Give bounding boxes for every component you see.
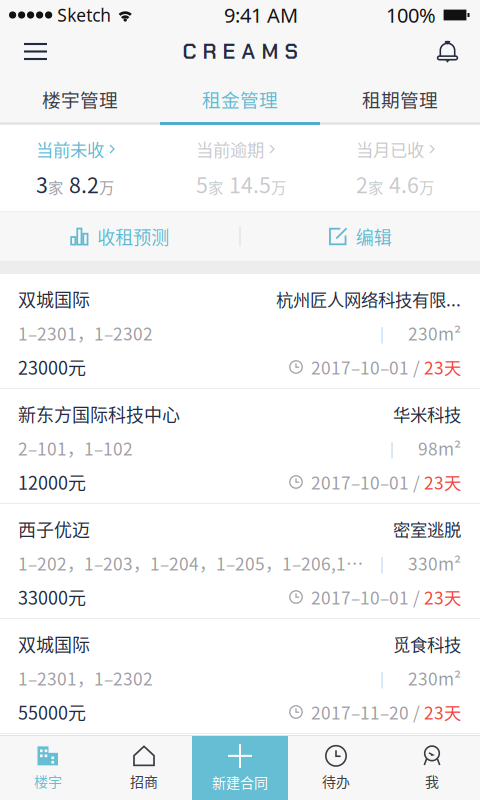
- button[interactable]: 新建合同: [192, 736, 288, 800]
- staticText: 230m²: [384, 665, 461, 691]
- staticText: 9:41 AM: [224, 2, 298, 28]
- button[interactable]: 新东方国际科技中心: [0, 389, 480, 504]
- button[interactable]: 西子优迈: [0, 504, 480, 619]
- staticText: 华米科技: [393, 401, 461, 427]
- button[interactable]: 楼宇: [0, 736, 96, 800]
- staticText: 2017–10–01 /: [303, 469, 424, 495]
- button[interactable]: 我: [384, 736, 480, 800]
- staticText: 4.6: [389, 169, 419, 199]
- staticText: 23000元: [18, 354, 86, 380]
- button[interactable]: 租期管理: [320, 73, 480, 125]
- staticText: C R E A M S: [182, 38, 297, 65]
- button[interactable]: 编辑: [240, 212, 480, 261]
- staticText: 33000元: [18, 584, 86, 610]
- staticText: Sketch: [52, 3, 116, 26]
- staticText: 2: [356, 169, 368, 199]
- staticText: |: [380, 322, 384, 344]
- staticText: 12000元: [18, 469, 86, 495]
- staticText: 2–101，1–102: [18, 435, 133, 461]
- staticText: 杭州匠人网络科技有限...: [276, 286, 461, 312]
- button[interactable]: 收租预测: [0, 212, 239, 261]
- button[interactable]: 双城国际: [0, 274, 480, 389]
- staticText: 3: [36, 169, 48, 199]
- staticText: 1–2301，1–2302: [18, 665, 153, 691]
- staticText: 编辑: [356, 223, 392, 250]
- staticText: 密室逃脱: [393, 516, 461, 542]
- staticText: 租金管理: [202, 85, 278, 112]
- staticText: 西子优迈: [18, 516, 90, 542]
- staticText: 楼宇管理: [42, 85, 118, 112]
- staticText: 万: [271, 176, 286, 198]
- staticText: 家: [368, 176, 383, 198]
- staticText: 100%: [386, 2, 436, 28]
- button[interactable]: 当前逾期: [160, 136, 320, 199]
- staticText: 2017–10–01 /: [303, 584, 424, 610]
- staticText: 双城国际: [18, 286, 90, 312]
- staticText: 98m²: [394, 435, 461, 461]
- staticText: 万: [99, 176, 114, 198]
- staticText: 55000元: [18, 699, 86, 725]
- button[interactable]: Menu: [0, 31, 61, 72]
- staticText: 23天: [424, 354, 461, 380]
- staticText: 5: [196, 169, 208, 199]
- staticText: 家: [48, 176, 63, 198]
- staticText: 招商: [130, 771, 158, 791]
- staticText: 1–2301，1–2302: [18, 320, 153, 346]
- staticText: 家: [208, 176, 223, 198]
- staticText: 收租预测: [97, 223, 169, 250]
- staticText: 330m²: [384, 550, 461, 576]
- button[interactable]: 当前未收: [0, 136, 160, 199]
- staticText: |: [380, 552, 384, 574]
- staticText: 当前逾期: [196, 136, 264, 162]
- staticText: 23天: [424, 584, 461, 610]
- staticText: 23天: [424, 699, 461, 725]
- staticText: 楼宇: [34, 771, 62, 791]
- staticText: 我: [425, 771, 439, 791]
- staticText: 2017–10–01 /: [303, 354, 424, 380]
- staticText: 1–202，1–203，1–204，1–205，1–206,1–207...: [18, 550, 370, 576]
- button[interactable]: 楼宇管理: [0, 73, 160, 125]
- staticText: 觅食科技: [393, 631, 461, 657]
- button[interactable]: 招商: [96, 736, 192, 800]
- staticText: 新东方国际科技中心: [18, 401, 180, 427]
- staticText: 23天: [424, 469, 461, 495]
- staticText: 租期管理: [362, 85, 438, 112]
- staticText: 当月已收: [356, 136, 424, 162]
- staticText: 2017–11–20 /: [303, 699, 424, 725]
- staticText: 待办: [322, 771, 350, 791]
- staticText: |: [390, 437, 394, 459]
- staticText: 双城国际: [18, 631, 90, 657]
- button[interactable]: 当月已收: [320, 136, 480, 199]
- button[interactable]: 待办: [288, 736, 384, 800]
- staticText: |: [380, 667, 384, 689]
- staticText: 14.5: [229, 169, 271, 199]
- staticText: 230m²: [384, 320, 461, 346]
- staticText: 新建合同: [212, 772, 268, 792]
- staticText: 万: [419, 176, 434, 198]
- button[interactable]: Notifications: [423, 30, 480, 72]
- button[interactable]: 租金管理: [160, 73, 320, 125]
- staticText: 8.2: [69, 169, 99, 199]
- staticText: 当前未收: [36, 136, 104, 162]
- button[interactable]: 双城国际: [0, 619, 480, 734]
